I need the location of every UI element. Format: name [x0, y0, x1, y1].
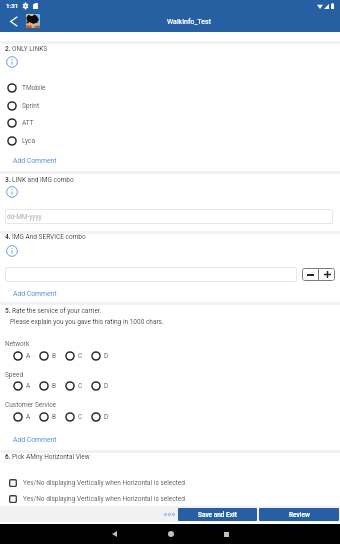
button[interactable]: B	[26, 409, 52, 425]
staticText: Lyca	[22, 137, 36, 145]
staticText: Add Comment	[13, 436, 57, 444]
button[interactable]: Recent apps	[216, 524, 236, 544]
button[interactable]: Information	[6, 245, 18, 257]
button[interactable]: Lyca	[0, 132, 340, 149]
button[interactable]: Profile picture	[26, 14, 40, 28]
staticText: Rate the service of your carrier.	[12, 307, 102, 315]
staticText: Speed	[5, 371, 24, 379]
button[interactable]: C	[52, 378, 78, 394]
staticText: dd-MM-yyyy	[7, 213, 42, 221]
button[interactable]	[5, 267, 297, 282]
staticText: 1:31	[6, 2, 19, 9]
staticText: Customer Service	[5, 401, 57, 409]
button[interactable]: TMobile	[0, 79, 340, 96]
staticText: TMobile	[22, 84, 46, 92]
button[interactable]: Review	[259, 508, 339, 521]
button[interactable]: D	[78, 348, 104, 364]
button[interactable]: Add Comment	[13, 157, 57, 165]
staticText: 3.	[5, 176, 11, 184]
button[interactable]: Yes/No displaying Vertically when Horizo…	[0, 475, 340, 491]
button[interactable]: C	[52, 348, 78, 364]
staticText: Sprint	[22, 102, 40, 110]
staticText: 4.	[5, 233, 11, 241]
staticText: Yes/No displaying Vertically when Horizo…	[23, 479, 185, 487]
button[interactable]: Home	[161, 524, 181, 544]
button[interactable]: More options	[160, 507, 178, 521]
staticText: Add Comment	[13, 157, 57, 165]
button[interactable]: Add Comment	[13, 436, 57, 444]
button[interactable]: Decrease value	[302, 268, 318, 281]
staticText: Pick AMny Horizontal View	[12, 453, 90, 461]
button[interactable]: Add Comment	[13, 290, 57, 298]
button[interactable]: Back	[104, 524, 124, 544]
button[interactable]: dd-MM-yyyy	[5, 209, 333, 224]
staticText: Network	[5, 340, 30, 348]
staticText: 5.	[5, 307, 11, 315]
button[interactable]: Navigate back	[6, 13, 22, 29]
staticText: IMG And SERVICE combo	[12, 233, 86, 241]
button[interactable]: Information	[6, 186, 18, 198]
staticText: Please explain you you gave this rating …	[10, 318, 164, 326]
button[interactable]: D	[78, 409, 104, 425]
button[interactable]: B	[26, 378, 52, 394]
staticText: Add Comment	[13, 290, 57, 298]
staticText: 2.	[5, 45, 11, 53]
staticText: ONLY LINKS	[12, 45, 48, 53]
button[interactable]: A	[0, 348, 26, 364]
staticText: Yes/No displaying Vertically when Horizo…	[23, 495, 185, 503]
button[interactable]: A	[0, 409, 26, 425]
staticText: LINK and IMG combo	[12, 176, 74, 184]
button[interactable]: D	[78, 378, 104, 394]
button[interactable]: Information	[6, 56, 18, 68]
button[interactable]: C	[52, 409, 78, 425]
button[interactable]: Sprint	[0, 97, 340, 114]
staticText: Save and Exit	[198, 511, 237, 519]
button[interactable]: Yes/No displaying Vertically when Horizo…	[0, 491, 340, 507]
staticText: ATT	[22, 119, 34, 127]
staticText: Review	[289, 511, 310, 519]
staticText: 6.	[5, 453, 11, 461]
staticText: WalkInfo_Test	[167, 18, 211, 26]
button[interactable]: B	[26, 348, 52, 364]
button[interactable]: Save and Exit	[178, 508, 257, 521]
button[interactable]: A	[0, 378, 26, 394]
button[interactable]: Increase value	[319, 268, 335, 281]
button[interactable]: ATT	[0, 114, 340, 131]
